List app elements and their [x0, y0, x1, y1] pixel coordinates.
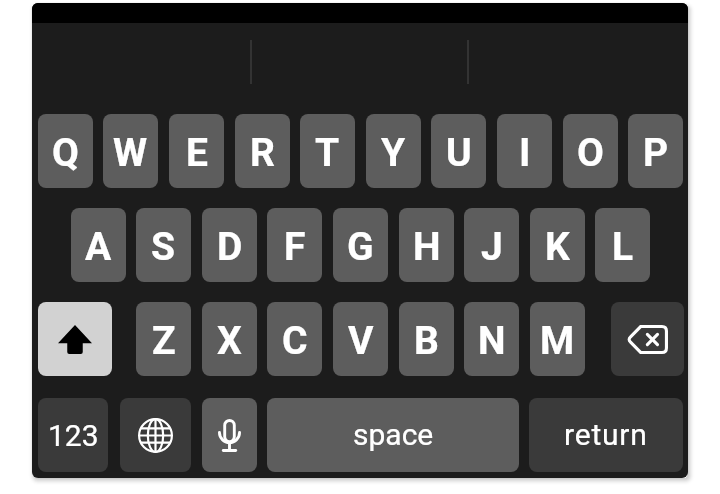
staticText: J: [481, 224, 503, 270]
button[interactable]: F: [267, 208, 322, 282]
button[interactable]: D: [202, 208, 257, 282]
staticText: B: [414, 318, 439, 364]
staticText: V: [348, 318, 374, 364]
button[interactable]: Backspace: [611, 302, 684, 376]
button[interactable]: Y: [366, 114, 421, 188]
button[interactable]: L: [595, 208, 650, 282]
staticText: 123: [48, 418, 99, 453]
button[interactable]: return: [529, 398, 683, 472]
button[interactable]: Q: [38, 114, 93, 188]
staticText: D: [217, 224, 243, 270]
button[interactable]: E: [169, 114, 224, 188]
button[interactable]: Z: [136, 302, 191, 376]
staticText: Q: [52, 130, 79, 176]
button[interactable]: P: [628, 114, 683, 188]
staticText: space: [353, 417, 434, 452]
button[interactable]: J: [464, 208, 519, 282]
button[interactable]: 123: [38, 398, 108, 472]
button[interactable]: C: [267, 302, 322, 376]
staticText: E: [186, 130, 208, 176]
staticText: C: [282, 318, 308, 364]
staticText: R: [250, 130, 275, 176]
button[interactable]: W: [103, 114, 158, 188]
staticText: A: [85, 224, 112, 270]
button[interactable]: V: [333, 302, 388, 376]
staticText: G: [347, 224, 374, 270]
staticText: X: [217, 318, 242, 364]
staticText: T: [315, 130, 340, 176]
button[interactable]: M: [530, 302, 585, 376]
button[interactable]: I: [497, 114, 552, 188]
button[interactable]: O: [563, 114, 618, 188]
staticText: return: [564, 417, 648, 452]
staticText: P: [643, 130, 669, 176]
staticText: S: [151, 224, 176, 270]
staticText: H: [413, 224, 441, 270]
staticText: F: [284, 224, 306, 270]
staticText: Z: [152, 318, 176, 364]
staticText: M: [540, 318, 575, 364]
button[interactable]: B: [399, 302, 454, 376]
button[interactable]: N: [464, 302, 519, 376]
button[interactable]: H: [399, 208, 454, 282]
button[interactable]: G: [333, 208, 388, 282]
button[interactable]: T: [300, 114, 355, 188]
staticText: Y: [381, 130, 406, 176]
button[interactable]: R: [235, 114, 290, 188]
button[interactable]: A: [71, 208, 126, 282]
button[interactable]: Shift: [38, 302, 112, 376]
staticText: L: [612, 224, 634, 270]
staticText: I: [519, 130, 531, 176]
staticText: N: [478, 318, 506, 364]
staticText: U: [446, 130, 472, 176]
button[interactable]: K: [530, 208, 585, 282]
button[interactable]: S: [136, 208, 191, 282]
button[interactable]: Switch keyboard language: [120, 398, 191, 472]
staticText: O: [577, 130, 604, 176]
staticText: K: [545, 224, 570, 270]
button[interactable]: Voice input: [202, 398, 257, 472]
staticText: W: [113, 130, 148, 176]
button[interactable]: U: [431, 114, 486, 188]
button[interactable]: space: [267, 398, 519, 472]
button[interactable]: X: [202, 302, 257, 376]
